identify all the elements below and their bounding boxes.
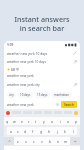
button[interactable]: y <box>40 117 48 125</box>
staticText: weather new york <box>7 74 34 78</box>
staticText: l <box>73 129 74 134</box>
staticText: s <box>17 129 19 134</box>
button[interactable]: Shift <box>4 137 14 145</box>
other: Insert suggestion <box>73 60 77 64</box>
button[interactable]: j <box>53 127 61 135</box>
staticText: manhattan <box>54 93 70 97</box>
staticText: v <box>41 139 43 144</box>
button[interactable]: h <box>45 127 53 135</box>
staticText: city <box>9 93 14 97</box>
staticText: b <box>49 139 52 144</box>
button[interactable]: weather new york 10 days <box>4 48 80 57</box>
staticText: z <box>17 139 19 144</box>
staticText: 15 days <box>37 93 48 97</box>
staticText: g <box>40 129 43 134</box>
staticText: w <box>13 119 16 124</box>
button[interactable]: m <box>62 137 70 145</box>
button[interactable]: w <box>11 117 18 125</box>
staticText: u <box>51 119 54 124</box>
button[interactable]: manhattan <box>52 92 72 98</box>
button[interactable]: 15 days <box>35 92 50 98</box>
staticText: weather new york 10 days <box>7 51 48 55</box>
staticText: m <box>64 139 68 144</box>
staticText: a <box>10 129 12 134</box>
staticText: Instant answers in search bar <box>14 14 70 33</box>
staticText: t <box>35 119 37 124</box>
button[interactable]: z <box>14 137 22 145</box>
button[interactable]: i <box>56 117 64 125</box>
button[interactable]: k <box>61 127 69 135</box>
button[interactable]: weather new york <box>4 72 80 80</box>
staticText: y <box>43 119 45 124</box>
button[interactable]: d <box>21 127 29 135</box>
button[interactable]: c <box>30 137 38 145</box>
button[interactable]: v <box>38 137 46 145</box>
staticText: 10 days <box>20 93 31 97</box>
button[interactable]: s <box>14 127 21 135</box>
button[interactable]: g <box>37 127 45 135</box>
button[interactable]: a <box>7 127 14 135</box>
other: Clear <box>56 103 59 106</box>
staticText: n <box>57 139 60 144</box>
staticText: q <box>6 119 9 124</box>
staticText: p <box>75 119 78 124</box>
staticText: j <box>57 129 58 134</box>
button[interactable]: Search <box>61 101 77 108</box>
button[interactable]: f <box>29 127 37 135</box>
button[interactable]: n <box>54 137 62 145</box>
button[interactable]: weather new york city <box>4 81 80 89</box>
other: Edit query <box>73 51 77 55</box>
button[interactable]: weather new york 10 days <box>4 58 80 66</box>
button[interactable]: Emoji <box>74 111 78 115</box>
staticText: o <box>67 119 70 124</box>
button[interactable]: x <box>22 137 30 145</box>
staticText: 9:09 <box>7 43 14 47</box>
staticText: i <box>60 119 61 124</box>
button[interactable]: l <box>69 127 77 135</box>
staticText: x <box>25 139 27 144</box>
staticText: d <box>24 129 27 134</box>
staticText: r <box>28 119 30 124</box>
button[interactable]: t <box>32 117 40 125</box>
staticText: k <box>64 129 66 134</box>
staticText: 68 °F <box>11 67 19 72</box>
other: Insert suggestion <box>73 83 77 87</box>
staticText: e <box>21 119 23 124</box>
button[interactable]: b <box>46 137 54 145</box>
staticText: f <box>32 129 34 134</box>
staticText: weather new york city <box>7 83 40 87</box>
button[interactable]: p <box>72 117 80 125</box>
staticText: weather new york 10 days <box>7 60 46 64</box>
button[interactable]: u <box>48 117 56 125</box>
staticText: Search <box>64 103 74 107</box>
button[interactable]: r <box>25 117 32 125</box>
button[interactable]: o <box>64 117 72 125</box>
staticText: c <box>33 139 35 144</box>
button[interactable]: e <box>18 117 25 125</box>
button[interactable]: q <box>4 117 11 125</box>
button[interactable]: Keyboard menu <box>6 111 10 115</box>
button[interactable]: city <box>7 92 16 98</box>
staticText: h <box>48 129 51 134</box>
button[interactable]: 10 days <box>18 92 33 98</box>
button[interactable]: Backspace <box>70 137 80 145</box>
staticText: weather new york <box>7 103 34 107</box>
